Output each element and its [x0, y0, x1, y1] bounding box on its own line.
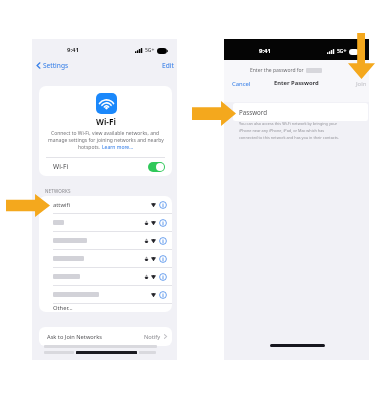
staticText: You can also access this Wi-Fi network b… — [239, 121, 338, 126]
button[interactable]: Ask to Join Networks — [47, 327, 167, 346]
staticText: hotspots. — [78, 144, 102, 151]
button[interactable]: Network info — [159, 273, 167, 281]
staticText: NETWORKS — [45, 188, 71, 194]
staticText: 5G+ — [337, 48, 347, 55]
staticText: connected to this network and has you in… — [239, 135, 339, 140]
staticText: Wi-Fi — [96, 116, 116, 127]
button[interactable]: Network info — [53, 250, 167, 267]
button[interactable]: Learn more... — [102, 144, 134, 151]
staticText: iPhone near any iPhone, iPad, or Mac whi… — [239, 128, 325, 133]
staticText: 5G+ — [145, 47, 155, 54]
staticText: Other... — [53, 304, 73, 312]
button[interactable]: Network info — [159, 237, 167, 245]
button[interactable]: Wi-Fi — [53, 157, 165, 176]
staticText: Wi-Fi — [53, 162, 69, 171]
staticText: attwifi — [53, 201, 70, 209]
staticText: Password — [239, 108, 267, 116]
button[interactable]: Network info — [159, 291, 167, 299]
staticText: Enter the password for — [250, 67, 304, 74]
staticText: Notify — [144, 333, 161, 341]
staticText: Ask to Join Networks — [47, 333, 102, 341]
staticText: Connect to Wi-Fi, view available network… — [51, 130, 160, 137]
staticText: manage settings for joining networks and… — [48, 137, 164, 144]
button[interactable]: Settings — [36, 59, 175, 71]
button[interactable]: Network info — [159, 255, 167, 263]
staticText: 9:41 — [259, 47, 271, 55]
button[interactable]: Password — [239, 103, 362, 121]
button[interactable]: Edit — [162, 61, 174, 70]
staticText: 9:41 — [67, 46, 79, 54]
button[interactable]: Join — [356, 80, 367, 88]
button[interactable]: attwifi — [53, 196, 167, 213]
staticText: Settings — [43, 61, 69, 70]
button[interactable]: Network info — [159, 201, 167, 209]
button[interactable]: Network info — [53, 214, 167, 231]
button[interactable]: Network info — [53, 286, 167, 303]
button[interactable]: Network info — [53, 232, 167, 249]
button[interactable]: Network info — [159, 219, 167, 227]
staticText: Enter Password — [274, 79, 319, 87]
button[interactable]: Other... — [53, 304, 158, 312]
button[interactable]: Network info — [53, 268, 167, 285]
button[interactable]: Cancel — [232, 80, 251, 88]
